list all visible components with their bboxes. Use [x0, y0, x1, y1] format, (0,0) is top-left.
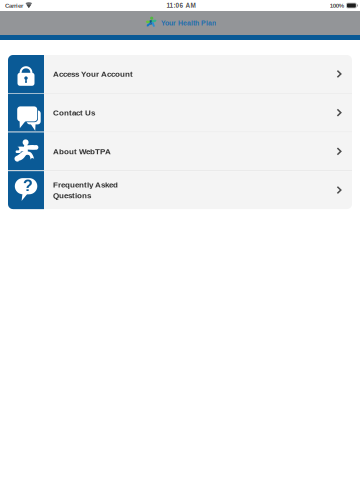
staticText: Access Your Account: [53, 69, 133, 78]
button[interactable]: About WebTPA: [8, 132, 352, 170]
staticText: Carrier: [5, 2, 23, 9]
staticText: Contact Us: [53, 108, 95, 117]
staticText: Questions: [53, 191, 91, 200]
staticText: 11:06 AM: [166, 2, 195, 9]
button[interactable]: Frequently Asked Questions: [8, 171, 352, 209]
button[interactable]: Access Your Account: [8, 55, 352, 93]
staticText: Frequently Asked: [53, 180, 118, 189]
staticText: 100%: [330, 2, 344, 9]
staticText: Your Health Plan: [161, 19, 216, 27]
button[interactable]: Contact Us: [8, 94, 352, 132]
staticText: ?: [23, 177, 33, 195]
staticText: About WebTPA: [53, 147, 111, 156]
